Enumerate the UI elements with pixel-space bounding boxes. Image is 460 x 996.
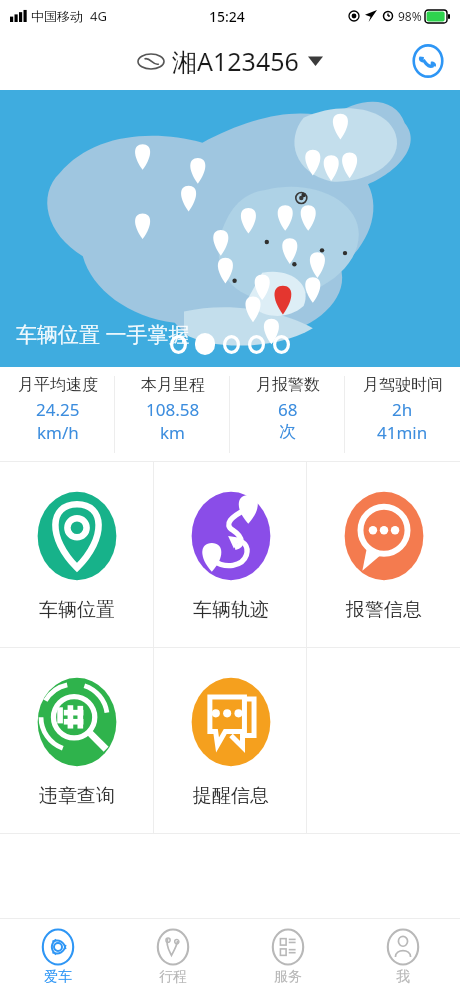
- button[interactable]: 车辆位置: [0, 462, 154, 647]
- staticText: 提醒信息: [193, 784, 269, 808]
- staticText: 108.58: [146, 398, 200, 421]
- staticText: 41min: [377, 421, 428, 444]
- staticText: 我: [396, 968, 410, 986]
- button[interactable]: 违章查询: [0, 648, 154, 833]
- button[interactable]: 提醒信息: [154, 648, 307, 833]
- button[interactable]: 车辆轨迹: [154, 462, 307, 647]
- button[interactable]: 服务: [230, 918, 345, 996]
- staticText: 月报警数: [256, 375, 320, 395]
- staticText: 违章查询: [39, 784, 115, 808]
- staticText: 中国移动: [31, 8, 83, 24]
- staticText: 爱车: [44, 968, 72, 986]
- button[interactable]: 我: [345, 918, 460, 996]
- button[interactable]: 本月里程: [115, 367, 230, 461]
- button[interactable]: 月平均速度: [0, 367, 115, 461]
- staticText: 行程: [159, 968, 187, 986]
- staticText: 次: [279, 421, 296, 442]
- staticText: 湘A123456: [172, 44, 299, 78]
- button[interactable]: 报警信息: [307, 462, 460, 647]
- button[interactable]: 月驾驶时间: [345, 367, 460, 461]
- staticText: 15:24: [209, 7, 245, 26]
- button[interactable]: 月报警数: [230, 367, 345, 461]
- staticText: 98%: [398, 8, 422, 24]
- staticText: 报警信息: [346, 598, 422, 622]
- button[interactable]: 行程: [115, 918, 230, 996]
- staticText: 24.25: [36, 398, 80, 421]
- button[interactable]: Call: [408, 41, 448, 81]
- staticText: 服务: [274, 968, 302, 986]
- staticText: 2h: [392, 398, 413, 421]
- staticText: 车辆位置: [39, 598, 115, 622]
- button[interactable]: 爱车: [0, 918, 115, 996]
- staticText: 车辆位置 一手掌握: [16, 320, 190, 349]
- staticText: 本月里程: [141, 375, 205, 395]
- staticText: km/h: [37, 421, 79, 444]
- staticText: 车辆轨迹: [193, 598, 269, 622]
- button[interactable]: 车辆位置 一手掌握: [0, 90, 460, 367]
- staticText: 4G: [90, 7, 107, 25]
- staticText: 月平均速度: [18, 375, 98, 395]
- staticText: 68: [278, 398, 298, 421]
- staticText: km: [160, 421, 185, 444]
- staticText: 月驾驶时间: [363, 375, 443, 395]
